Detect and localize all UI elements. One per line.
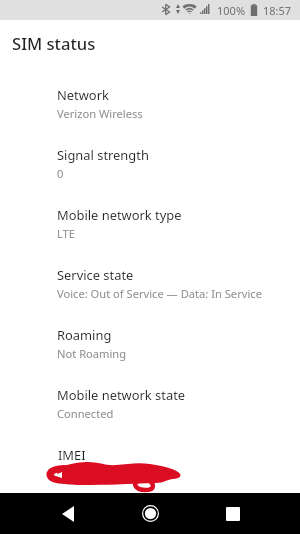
staticText: IMEI [58,446,86,464]
staticText: Mobile network type [57,206,182,224]
staticText: Not Roaming [57,346,127,361]
button[interactable]: Service state [0,259,300,319]
staticText: LTE [57,226,76,241]
button[interactable]: IMEI [0,443,300,493]
staticText: Mobile network state [57,386,186,404]
staticText: Network [57,86,109,104]
button[interactable]: Back [34,493,102,534]
staticText: Service state [57,266,134,284]
staticText: 100% [217,3,246,18]
button[interactable]: Recents [199,493,267,534]
button[interactable]: Mobile network type [0,199,300,259]
staticText: 0 [57,166,64,181]
staticText: 18:57 [263,3,292,18]
staticText: Roaming [57,326,112,344]
button[interactable]: Roaming [0,319,300,379]
staticText: SIM status [12,32,96,55]
staticText: Connected [57,406,114,421]
button[interactable]: Home [116,493,184,534]
button[interactable]: Mobile network state [0,379,300,439]
staticText: Signal strength [57,146,149,164]
button[interactable]: SIM status [0,20,300,63]
staticText: Voice: Out of Service — Data: In Service [57,286,262,301]
staticText: Verizon Wireless [57,106,143,121]
button[interactable]: Network [0,79,300,139]
button[interactable]: Signal strength [0,139,300,199]
